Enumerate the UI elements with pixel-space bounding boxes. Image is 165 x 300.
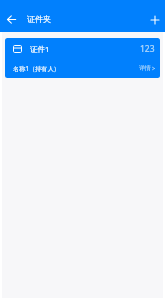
staticText: 详情: [139, 64, 151, 72]
button[interactable]: 证件1: [5, 38, 160, 78]
staticText: 名称1（持有人）: [13, 64, 60, 72]
button[interactable]: Back: [0, 8, 22, 30]
button[interactable]: 详情: [139, 64, 155, 72]
staticText: 证件夹: [27, 14, 51, 24]
staticText: 证件1: [30, 44, 50, 54]
button[interactable]: Add: [144, 9, 165, 31]
staticText: 123: [140, 43, 155, 55]
